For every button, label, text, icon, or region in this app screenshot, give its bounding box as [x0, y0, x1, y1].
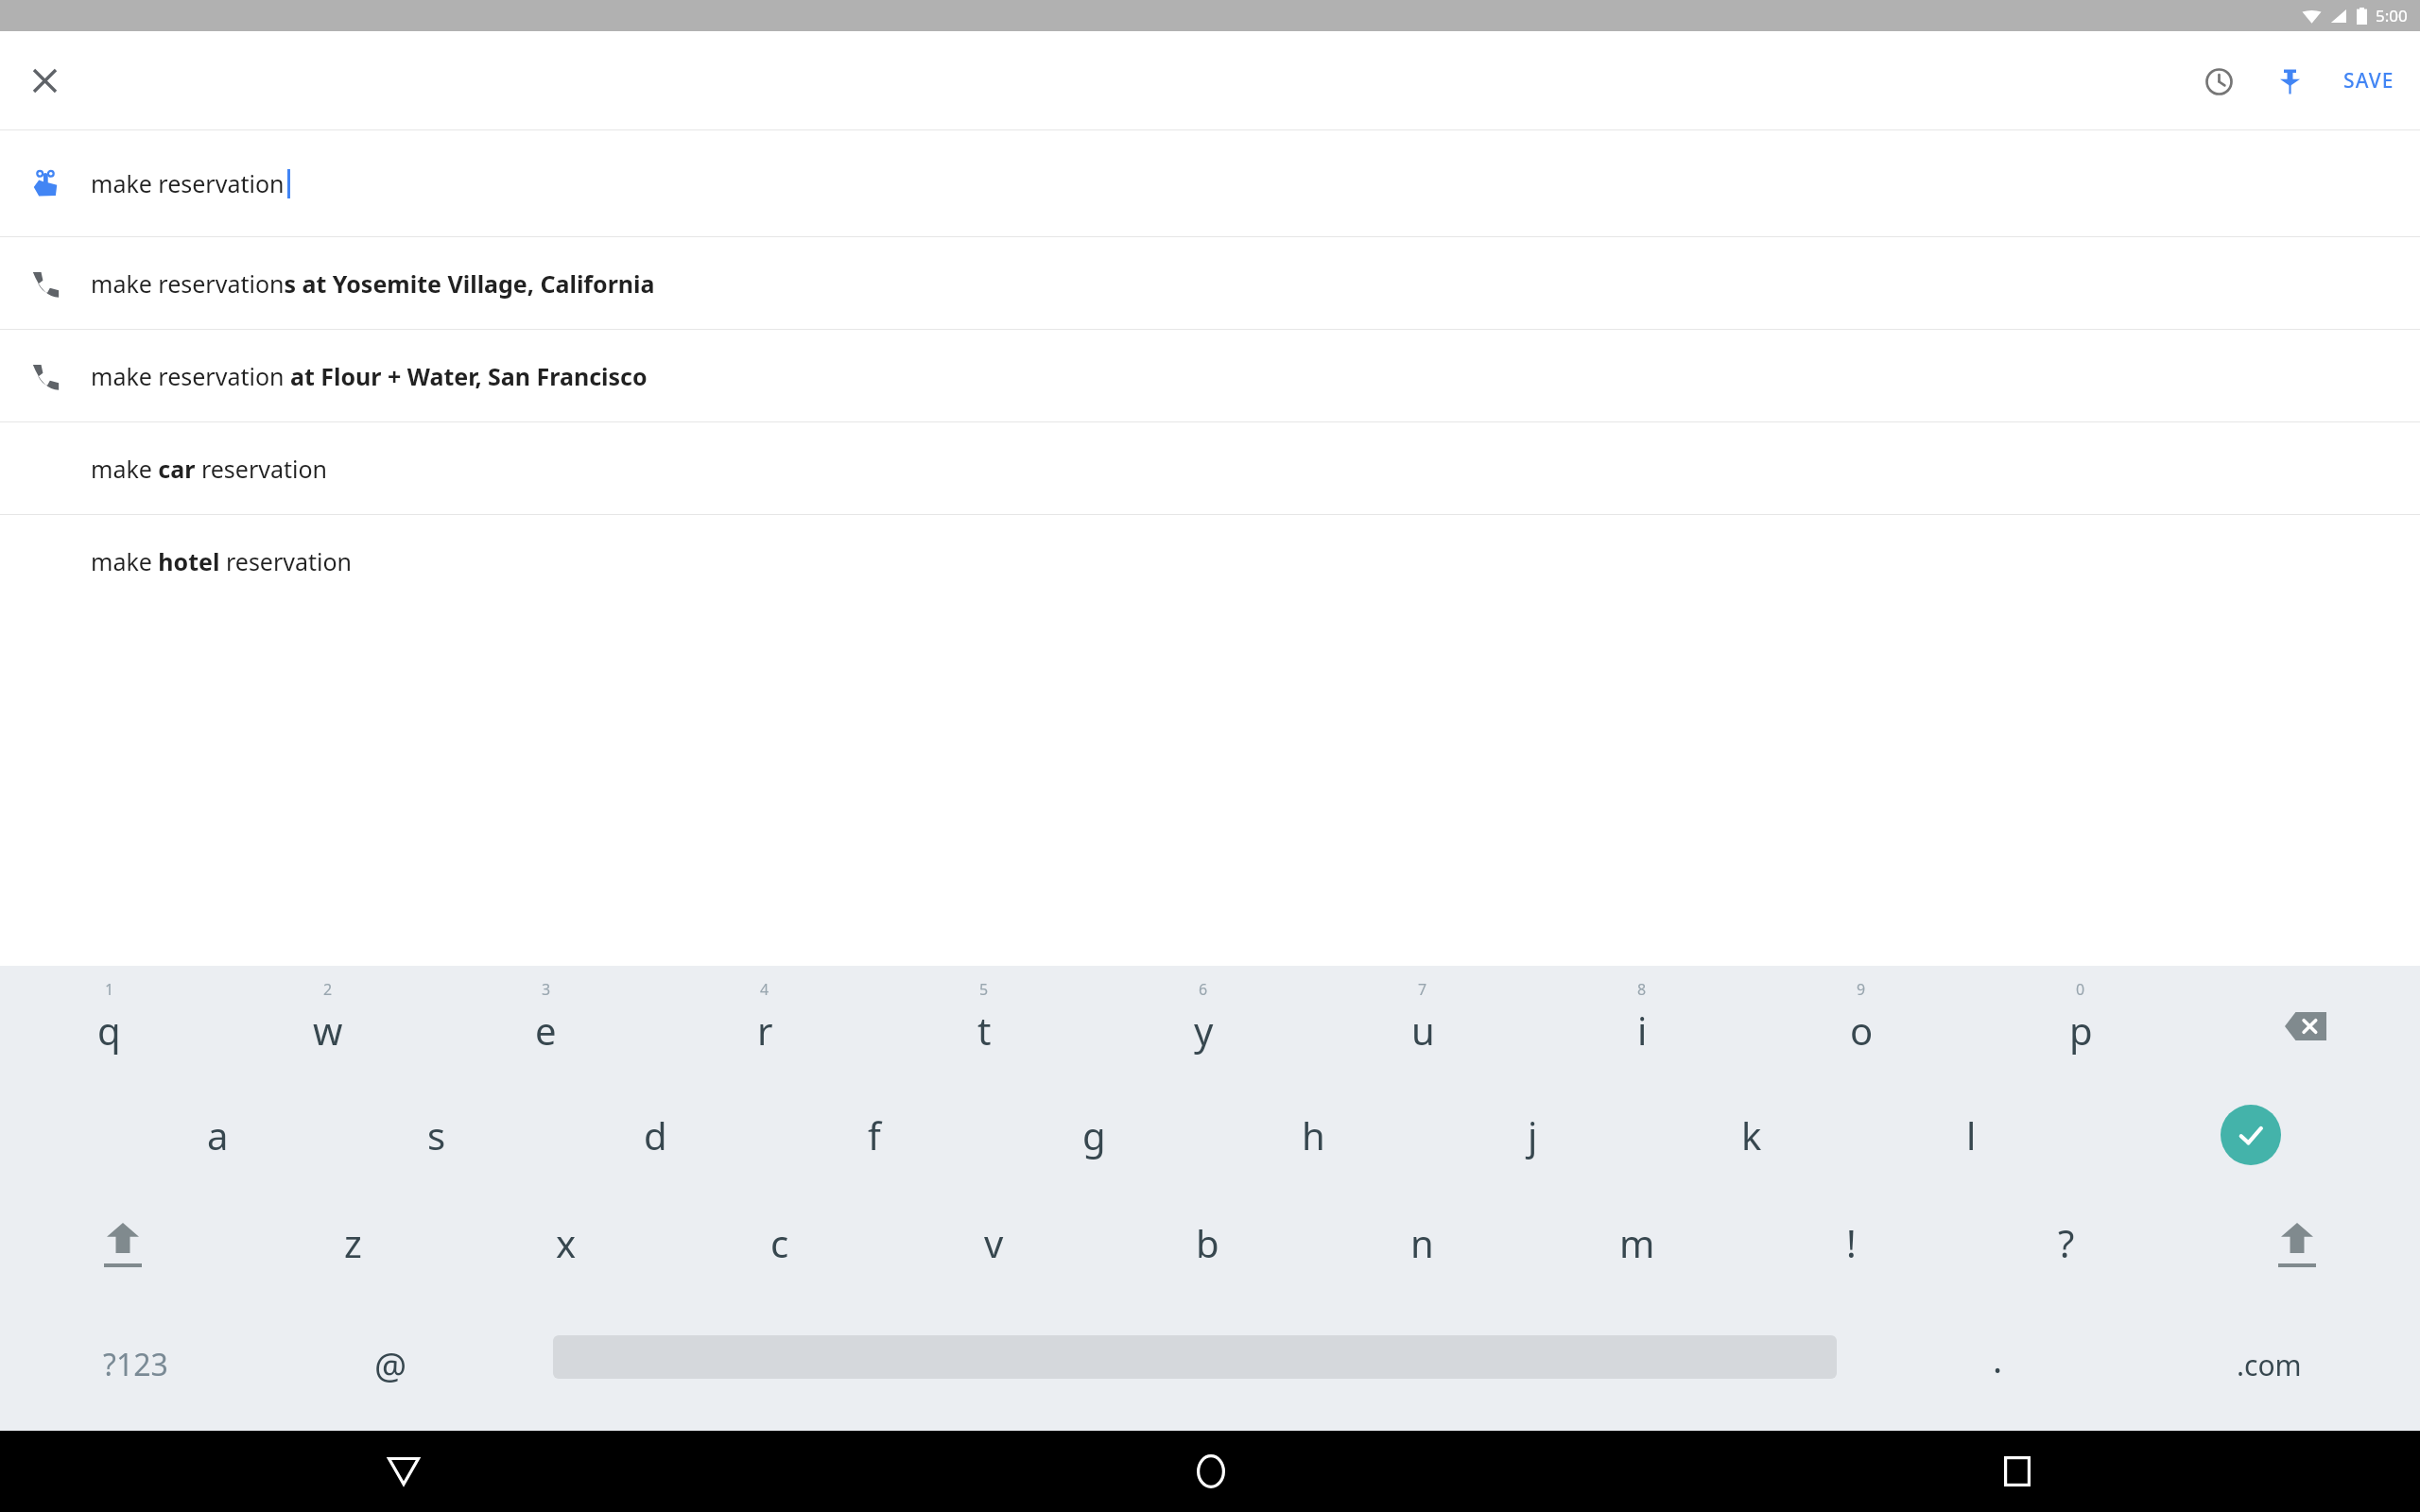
button[interactable]: 9 [1752, 966, 1971, 1079]
button[interactable]: d [545, 1079, 765, 1191]
staticText: 4 [760, 979, 769, 1000]
button[interactable]: make reservation at Flour + Water, San F… [0, 330, 2420, 421]
button[interactable]: 1 [0, 966, 218, 1079]
button[interactable]: s [327, 1079, 545, 1191]
button[interactable]: make reservations at Yosemite Village, C… [0, 237, 2420, 329]
staticText: 1 [105, 979, 114, 1000]
button[interactable]: make car reservation [0, 422, 2420, 514]
button[interactable]: Shift [2173, 1191, 2420, 1306]
staticText: y [1194, 1005, 1214, 1056]
staticText: p [2069, 1005, 2093, 1056]
staticText: SAVE [2343, 67, 2394, 94]
staticText: a [207, 1109, 229, 1160]
staticText: ! [1846, 1217, 1857, 1268]
staticText: i [1637, 1005, 1648, 1056]
staticText: n [1410, 1217, 1434, 1268]
staticText: make reservations at Yosemite Village, C… [91, 267, 655, 300]
staticText: ? [2058, 1217, 2075, 1268]
button[interactable]: SAVE [2329, 53, 2409, 109]
button[interactable]: Recents [1614, 1431, 2420, 1512]
button[interactable]: 0 [1971, 966, 2190, 1079]
staticText: g [1082, 1109, 1106, 1160]
button[interactable]: 3 [437, 966, 655, 1079]
button[interactable]: 6 [1094, 966, 1313, 1079]
button[interactable]: c [673, 1191, 887, 1306]
staticText: e [535, 1005, 557, 1056]
button[interactable]: make hotel reservation [0, 515, 2420, 607]
staticText: h [1302, 1109, 1325, 1160]
staticText: f [868, 1109, 881, 1160]
staticText: 8 [1637, 979, 1647, 1000]
button[interactable]: n [1315, 1191, 1530, 1306]
button[interactable]: 4 [655, 966, 874, 1079]
button[interactable]: Shift [0, 1191, 246, 1306]
button[interactable]: b [1100, 1191, 1315, 1306]
button[interactable]: Close [17, 53, 72, 108]
staticText: 5 [979, 979, 989, 1000]
button[interactable]: l [1861, 1079, 2081, 1191]
staticText: z [344, 1217, 362, 1268]
button[interactable]: Back [0, 1431, 807, 1512]
staticText: . [1993, 1334, 2003, 1383]
staticText: k [1741, 1109, 1762, 1160]
staticText: l [1966, 1109, 1977, 1160]
button[interactable]: make reservation [0, 130, 2420, 236]
staticText: 0 [2076, 979, 2085, 1000]
staticText: r [757, 1005, 773, 1056]
staticText: 9 [1857, 979, 1866, 1000]
button[interactable]: j [1423, 1079, 1642, 1191]
staticText: 7 [1418, 979, 1427, 1000]
staticText: 5:00 [2376, 5, 2408, 26]
button[interactable]: Enter [2081, 1079, 2420, 1191]
button[interactable]: @ [270, 1306, 511, 1431]
staticText: v [984, 1217, 1004, 1268]
staticText: make car reservation [91, 453, 328, 485]
button[interactable]: h [1203, 1079, 1423, 1191]
button[interactable]: Backspace [2190, 966, 2420, 1079]
staticText: .com [2237, 1346, 2302, 1384]
button[interactable]: x [459, 1191, 673, 1306]
staticText: t [977, 1005, 992, 1056]
button[interactable]: Space [511, 1306, 1877, 1431]
button[interactable]: v [887, 1191, 1100, 1306]
staticText: make hotel reservation [91, 545, 353, 577]
staticText: 3 [542, 979, 551, 1000]
staticText: 6 [1199, 979, 1208, 1000]
staticText: d [644, 1109, 667, 1160]
staticText: m [1619, 1217, 1655, 1268]
button[interactable]: k [1642, 1079, 1861, 1191]
button[interactable]: f [765, 1079, 984, 1191]
button[interactable]: ?123 [0, 1306, 270, 1431]
staticText: make reservation [91, 167, 285, 199]
button[interactable]: m [1530, 1191, 1744, 1306]
staticText: o [1850, 1005, 1874, 1056]
button[interactable]: . [1877, 1306, 2118, 1431]
staticText: b [1196, 1217, 1219, 1268]
button[interactable]: 5 [874, 966, 1094, 1079]
staticText: c [770, 1217, 789, 1268]
staticText: 2 [323, 979, 333, 1000]
staticText: ?123 [103, 1344, 168, 1385]
staticText: j [1528, 1109, 1538, 1160]
button[interactable]: Home [807, 1431, 1614, 1512]
button[interactable]: 2 [218, 966, 437, 1079]
button[interactable]: z [246, 1191, 459, 1306]
button[interactable]: 7 [1313, 966, 1532, 1079]
button[interactable]: ? [1959, 1191, 2173, 1306]
button[interactable]: .com [2118, 1306, 2420, 1431]
staticText: make reservation at Flour + Water, San F… [91, 360, 648, 392]
staticText: s [427, 1109, 446, 1160]
staticText: w [313, 1005, 343, 1056]
button[interactable]: g [984, 1079, 1203, 1191]
button[interactable]: Recent searches [2191, 54, 2246, 109]
staticText: q [97, 1005, 121, 1056]
staticText: @ [374, 1340, 407, 1389]
button[interactable]: 8 [1532, 966, 1752, 1079]
staticText: u [1411, 1005, 1435, 1056]
button[interactable]: ! [1744, 1191, 1959, 1306]
staticText: x [556, 1217, 577, 1268]
button[interactable]: Pin [2263, 55, 2316, 108]
button[interactable]: a [109, 1079, 327, 1191]
